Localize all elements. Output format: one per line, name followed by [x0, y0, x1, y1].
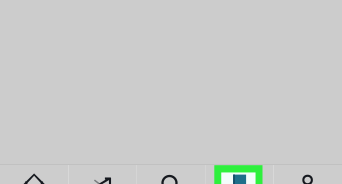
button[interactable]: Search [137, 165, 205, 184]
button[interactable]: Insights [68, 165, 137, 184]
button[interactable]: Home [0, 165, 68, 184]
button[interactable]: Library [205, 165, 274, 184]
button[interactable]: Profile [274, 165, 342, 184]
